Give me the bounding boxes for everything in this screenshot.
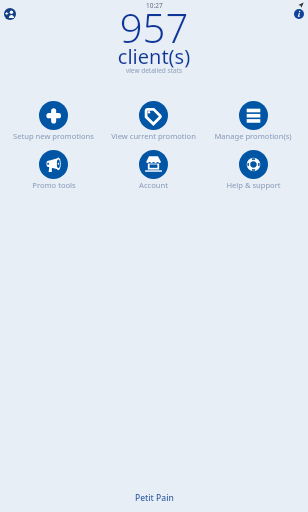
staticText: client(s) — [0, 43, 308, 70]
staticText: Setup new promotions — [13, 131, 94, 141]
button[interactable]: View current promotion — [103, 101, 203, 141]
button[interactable]: Account — [103, 150, 203, 190]
staticText: View current promotion — [111, 131, 196, 141]
staticText: Help & support — [226, 180, 281, 190]
button[interactable]: Help and support — [203, 150, 303, 190]
staticText: Account — [139, 180, 168, 190]
button[interactable]: Info — [294, 9, 304, 19]
button[interactable]: Promo tools — [4, 150, 103, 190]
staticText: 10:27 — [146, 1, 163, 10]
staticText: Manage promotion(s) — [214, 131, 292, 141]
button[interactable]: Manage promotions — [203, 101, 303, 141]
button[interactable]: Add client — [4, 8, 16, 20]
staticText: Petit Pain — [135, 492, 174, 504]
button[interactable]: view detailed stats — [0, 66, 308, 75]
staticText: Promo tools — [32, 180, 76, 190]
staticText: 957 — [0, 0, 308, 54]
button[interactable]: Setup new promotions — [4, 101, 103, 141]
